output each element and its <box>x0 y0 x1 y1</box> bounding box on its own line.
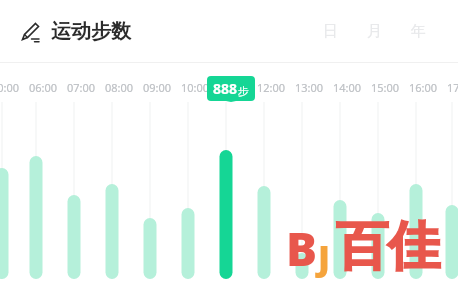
staticText: 运动步数 <box>51 19 131 44</box>
button[interactable]: 日 <box>308 16 352 46</box>
button[interactable]: 月 <box>352 16 396 46</box>
staticText: 10:00 <box>176 80 214 95</box>
staticText: 08:00 <box>100 80 138 95</box>
staticText: 16:00 <box>404 80 442 95</box>
staticText: J <box>318 234 330 280</box>
other: Steps <box>18 20 42 44</box>
button[interactable]: Steps <box>18 19 131 44</box>
staticText: 百佳 <box>336 214 440 280</box>
button[interactable]: 年 <box>396 16 440 46</box>
staticText: 06:00 <box>24 80 62 95</box>
staticText: B <box>286 217 318 280</box>
button[interactable]: 888 <box>207 76 255 101</box>
staticText: 07:00 <box>62 80 100 95</box>
staticText: 09:00 <box>138 80 176 95</box>
staticText: 月 <box>367 22 382 41</box>
staticText: 14:00 <box>328 80 366 95</box>
staticText: 17:00 <box>442 80 458 95</box>
staticText: 888 <box>213 79 238 98</box>
staticText: 12:00 <box>252 80 290 95</box>
staticText: 13:00 <box>290 80 328 95</box>
staticText: 15:00 <box>366 80 404 95</box>
staticText: 年 <box>411 22 426 41</box>
staticText: 步 <box>238 84 249 98</box>
staticText: 00:00 <box>0 80 24 95</box>
staticText: 日 <box>323 22 338 41</box>
